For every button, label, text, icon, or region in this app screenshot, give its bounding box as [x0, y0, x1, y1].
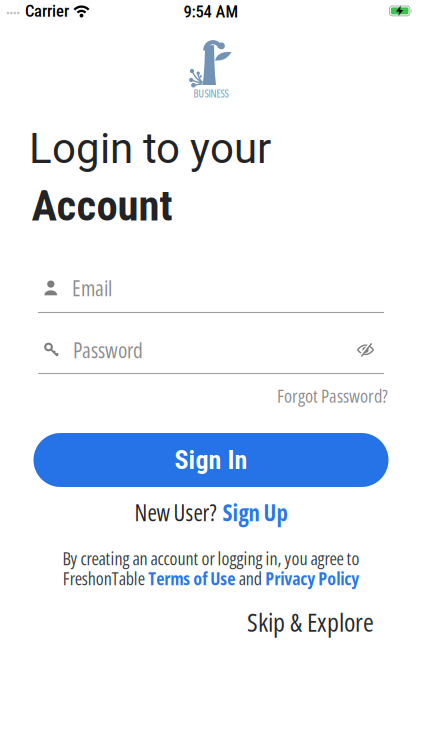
button[interactable]: Show password	[357, 343, 374, 357]
staticText: FreshonTable	[63, 566, 145, 590]
staticText: Forgot Password?	[277, 383, 388, 408]
staticText: Terms of Use	[148, 566, 235, 590]
staticText: Sign Up	[222, 497, 287, 528]
button[interactable]: Sign Up	[222, 497, 287, 528]
staticText: New User?	[134, 497, 216, 528]
staticText: Skip & Explore	[247, 604, 374, 639]
button[interactable]: Skip & Explore	[247, 604, 374, 639]
staticText: Password	[73, 335, 143, 365]
button[interactable]: Sign In	[33, 433, 388, 487]
staticText: Carrier	[25, 1, 69, 21]
button[interactable]: Terms of Use	[148, 566, 235, 590]
button[interactable]: Forgot Password?	[277, 383, 388, 408]
staticText: 9:54 AM	[183, 2, 238, 21]
staticText: Email	[72, 273, 112, 303]
staticText: Account	[31, 181, 172, 231]
staticText: Login to your	[29, 124, 271, 173]
staticText: By creating an account or logging in, yo…	[62, 546, 359, 570]
staticText: Sign In	[174, 445, 247, 475]
button[interactable]: Privacy Policy	[265, 566, 359, 590]
staticText: Privacy Policy	[265, 566, 359, 590]
staticText: BUSINESS	[193, 86, 228, 100]
staticText: and	[239, 566, 262, 590]
